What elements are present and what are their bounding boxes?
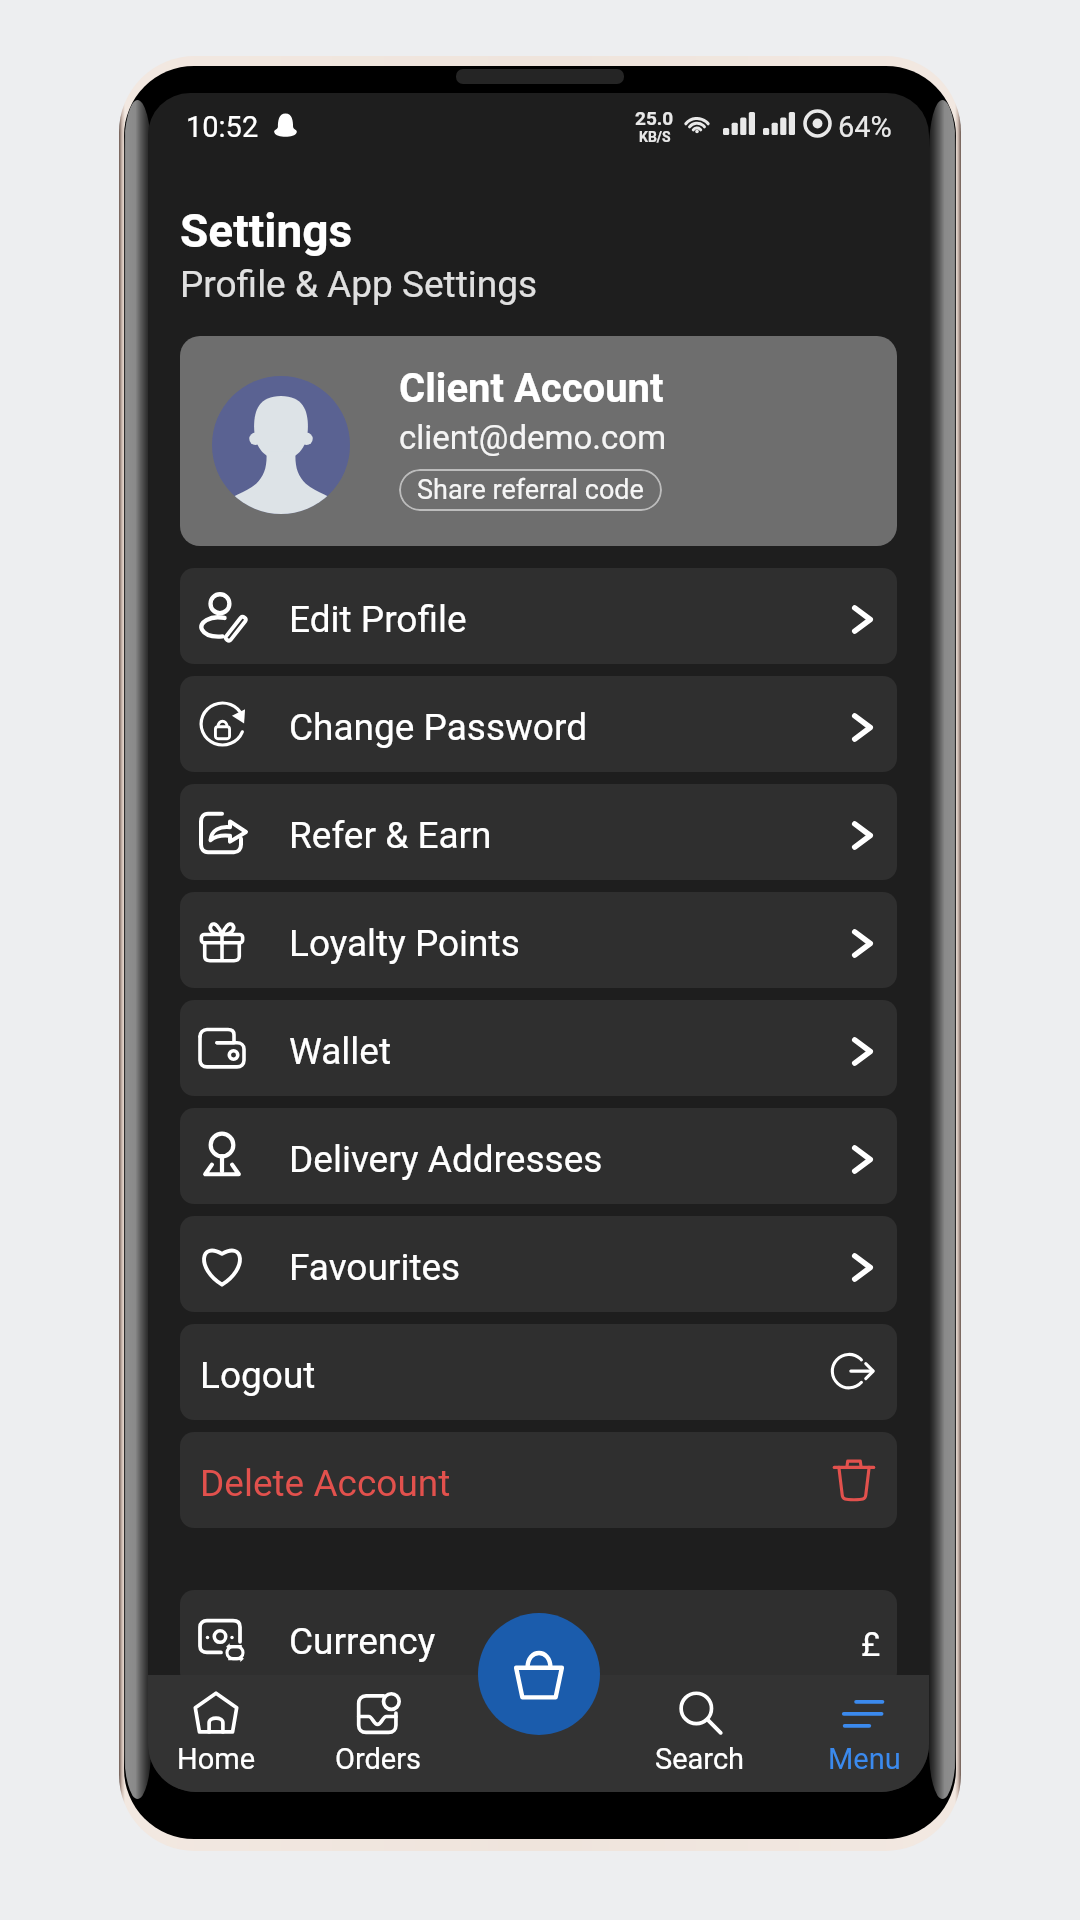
staticText: Edit Profile (289, 598, 467, 641)
staticText: Change Password (289, 706, 588, 749)
button[interactable]: Delivery Addresses (180, 1108, 897, 1204)
button[interactable]: Refer & Earn (180, 784, 897, 880)
button[interactable]: Logout (180, 1324, 897, 1420)
staticText: Search (655, 1742, 745, 1776)
button[interactable]: Change Password (180, 676, 897, 772)
staticText: Share referral code (417, 474, 644, 506)
button[interactable]: Cart (478, 1613, 600, 1735)
staticText: Logout (200, 1354, 316, 1397)
button[interactable]: Favourites (180, 1216, 897, 1312)
staticText: Client Account (399, 365, 664, 412)
staticText: 25.0 (635, 107, 674, 129)
staticText: Settings (180, 204, 353, 258)
button[interactable]: Orders (308, 1675, 448, 1792)
other: Logout (831, 1350, 875, 1394)
button[interactable]: Currency (180, 1590, 897, 1686)
button[interactable]: Search (630, 1675, 770, 1792)
button[interactable]: Client Account (180, 336, 897, 546)
button[interactable]: Wallet (180, 1000, 897, 1096)
button[interactable]: Menu (794, 1675, 929, 1792)
staticText: Home (177, 1742, 256, 1776)
staticText: Orders (335, 1742, 422, 1776)
staticText: Loyalty Points (289, 922, 520, 965)
staticText: 64% (838, 110, 892, 144)
staticText: Profile & App Settings (180, 263, 538, 306)
button[interactable]: Loyalty Points (180, 892, 897, 988)
button[interactable]: Home (148, 1675, 286, 1792)
button[interactable]: Delete Account (180, 1432, 897, 1528)
staticText: KB/S (639, 129, 671, 145)
staticText: £ (861, 1625, 881, 1664)
button[interactable]: Share referral code (399, 469, 662, 511)
staticText: Refer & Earn (289, 814, 492, 857)
staticText: client@demo.com (399, 418, 667, 457)
button[interactable]: Edit Profile (180, 568, 897, 664)
staticText: Favourites (289, 1246, 461, 1289)
staticText: Delete Account (200, 1462, 451, 1505)
staticText: Currency (289, 1620, 436, 1663)
staticText: Wallet (289, 1030, 392, 1073)
staticText: Menu (828, 1742, 901, 1776)
other: Delete account (833, 1459, 875, 1501)
staticText: Delivery Addresses (289, 1138, 603, 1181)
staticText: 10:52 (186, 110, 259, 144)
